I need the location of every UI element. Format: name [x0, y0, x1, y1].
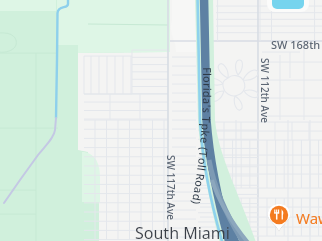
button[interactable]	[0, 0, 322, 241]
